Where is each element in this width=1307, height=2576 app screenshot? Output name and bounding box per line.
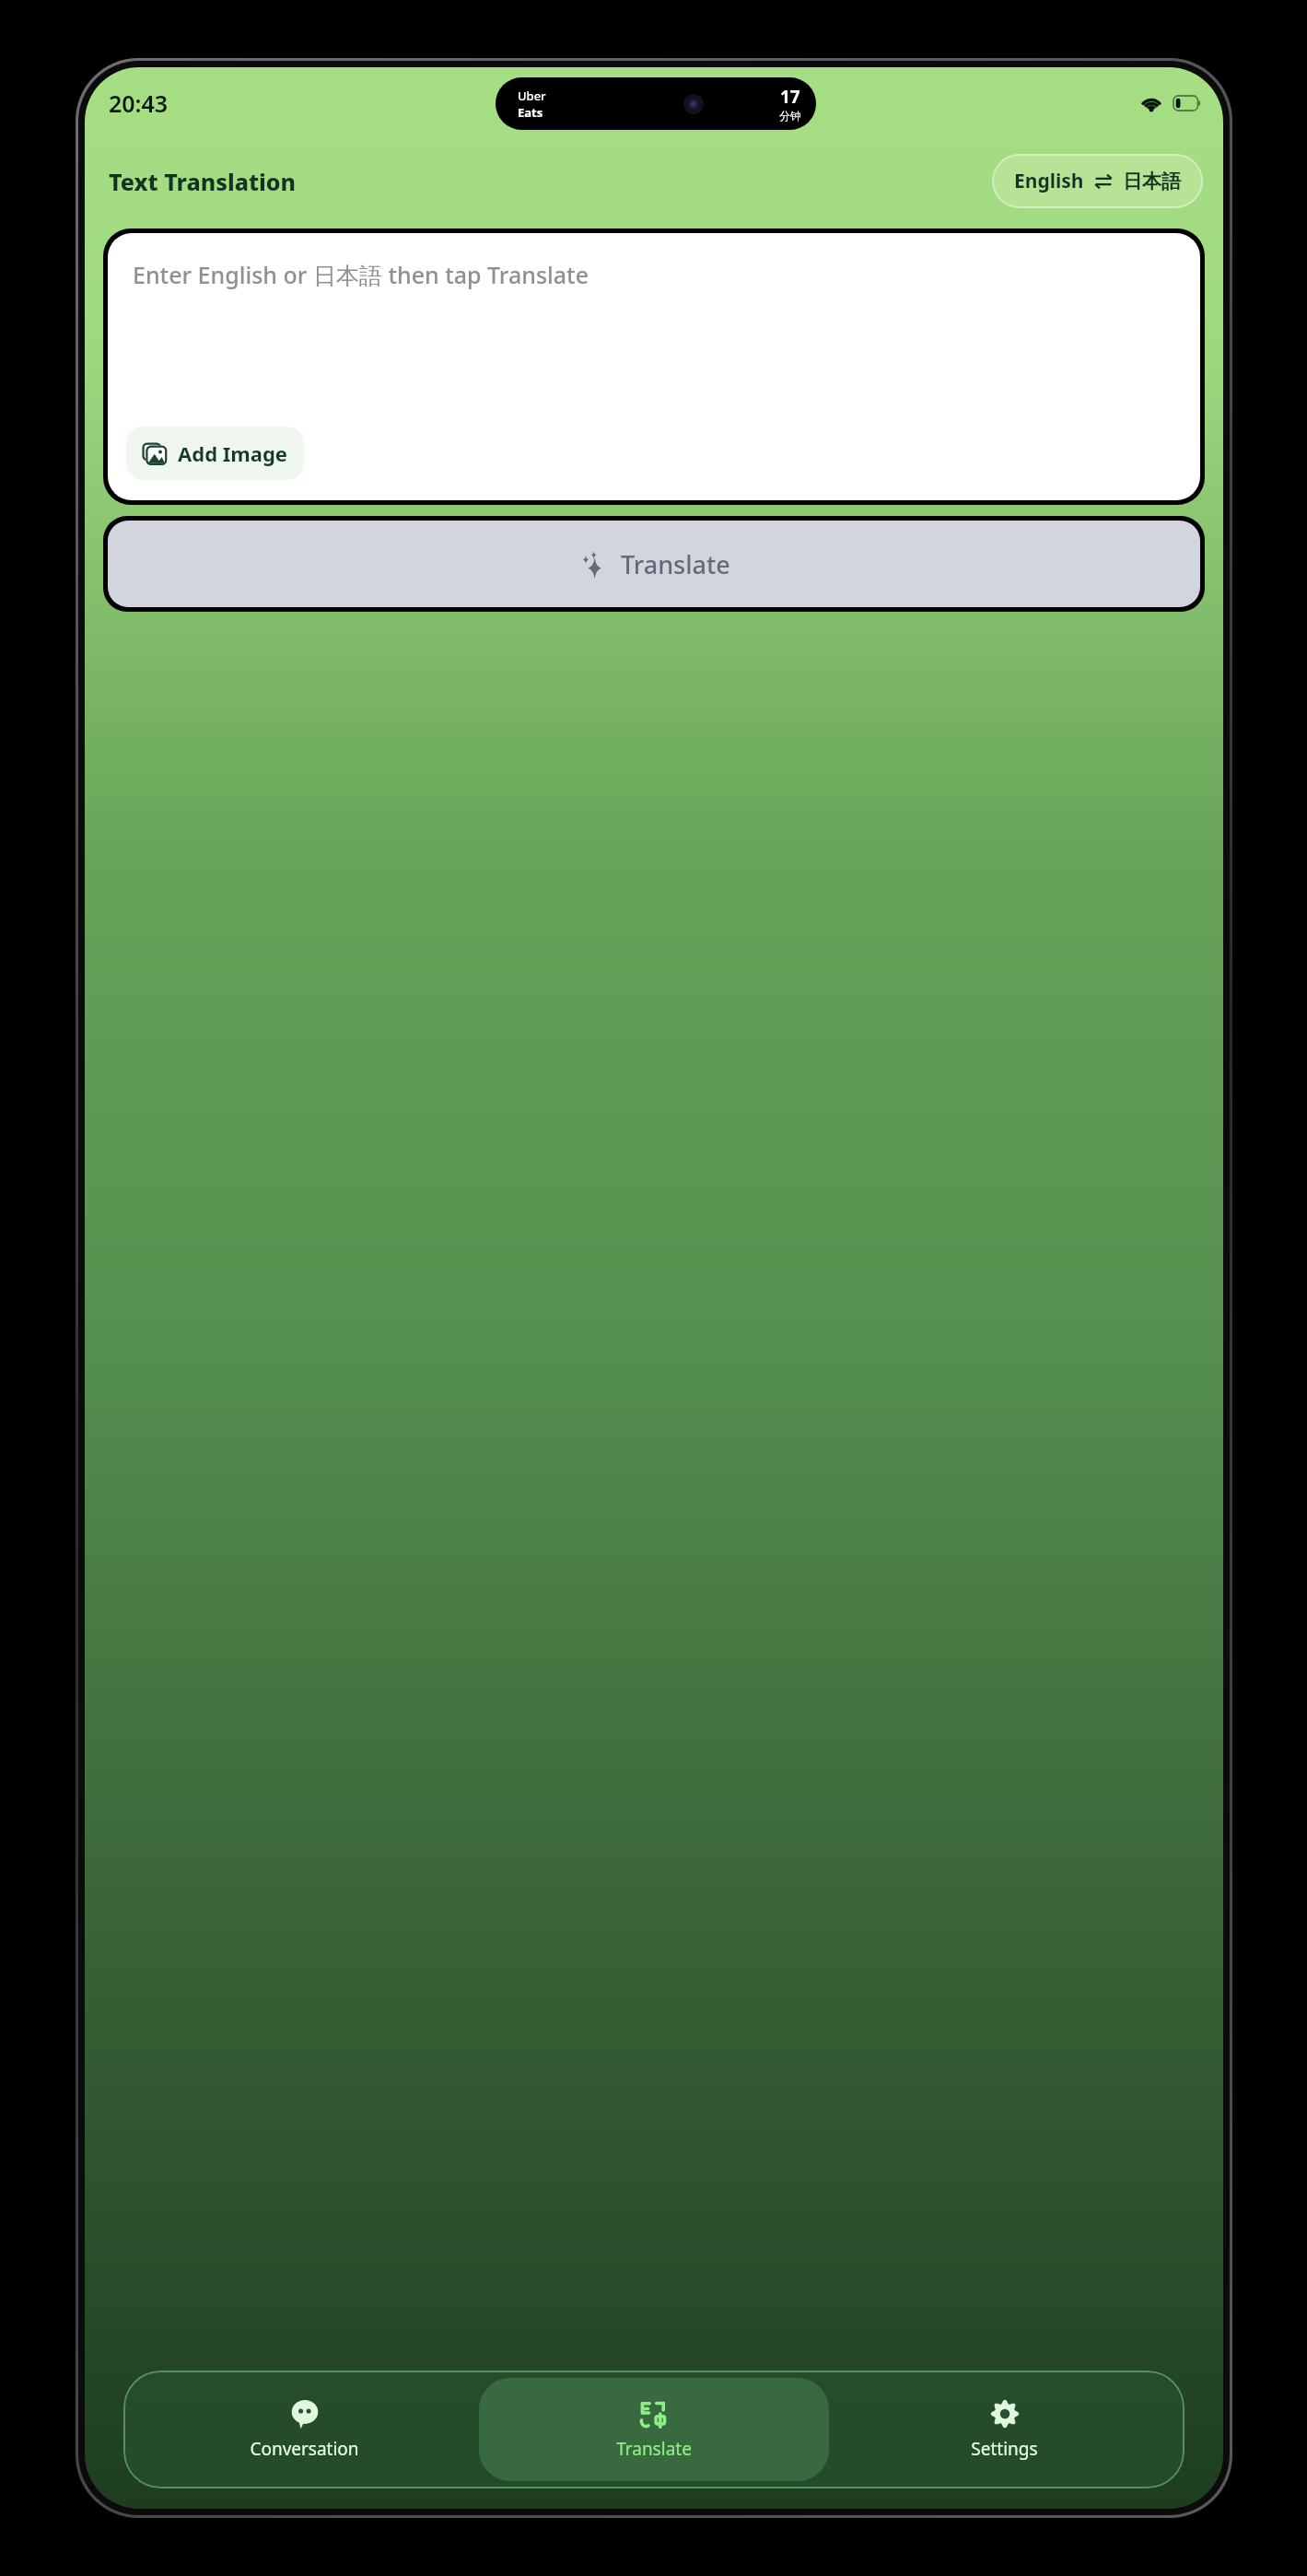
staticText: Eats [518,104,543,121]
staticText: Settings [971,2437,1038,2461]
staticText: Translate [621,547,730,581]
staticText: 17 [780,85,800,109]
staticText: 日本語 [1123,170,1181,193]
button[interactable]: Settings [829,2378,1179,2481]
staticText: Uber [518,88,546,104]
staticText: Translate [616,2437,692,2461]
staticText: Enter English or 日本語 then tap Translate [133,259,589,290]
staticText: Text Translation [109,166,297,197]
button[interactable]: Enter English or 日本語 then tap Translate [108,233,1200,500]
staticText: Conversation [250,2437,359,2461]
button[interactable]: Conversation [129,2378,479,2481]
button[interactable]: Translate [479,2378,829,2481]
staticText: Add Image [178,439,287,467]
staticText: 分钟 [779,109,801,123]
button[interactable]: Add Image [126,427,304,480]
button[interactable]: Translate [108,521,1200,607]
button[interactable]: English [992,154,1203,208]
staticText: English [1014,168,1084,194]
staticText: 20:43 [109,88,169,119]
